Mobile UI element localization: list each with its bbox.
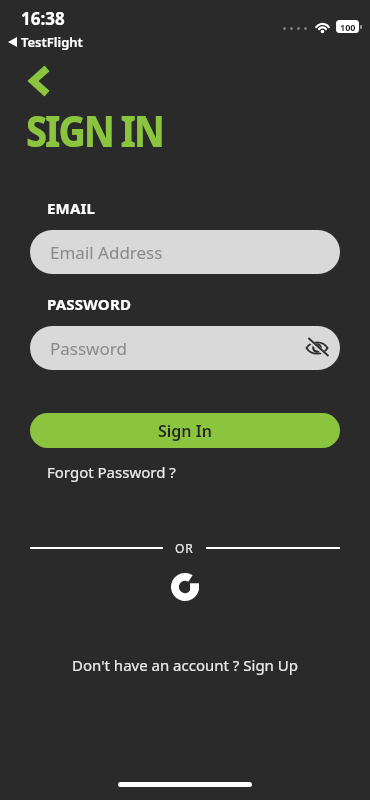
staticText: PASSWORD	[47, 294, 132, 314]
staticText: SIGN IN	[26, 102, 163, 159]
staticText: TestFlight	[21, 33, 83, 51]
button[interactable]: Forgot Password ?	[47, 462, 176, 482]
button[interactable]: Email Address	[30, 230, 340, 274]
staticText: Password	[50, 337, 127, 360]
staticText: OR	[175, 540, 194, 556]
button[interactable]: TestFlight	[8, 33, 83, 51]
staticText: 16:38	[21, 7, 65, 30]
staticText: 100	[340, 21, 356, 33]
button[interactable]	[171, 573, 199, 601]
staticText: Sign In	[158, 420, 212, 442]
button[interactable]	[29, 66, 51, 96]
button[interactable]	[305, 338, 329, 358]
staticText: EMAIL	[47, 198, 96, 218]
button[interactable]: Password	[30, 326, 340, 370]
button[interactable]: Sign In	[30, 413, 340, 448]
button[interactable]: Don't have an account ? Sign Up	[0, 655, 370, 675]
staticText: Email Address	[50, 241, 163, 264]
